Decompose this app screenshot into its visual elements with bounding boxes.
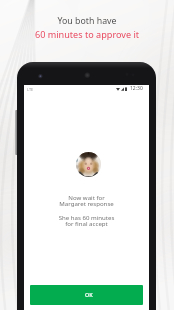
button[interactable]: OK — [30, 285, 143, 305]
staticText: 60 minutes to approve it — [0, 28, 174, 40]
staticText: 12:30 — [130, 85, 143, 92]
staticText: You both have — [0, 15, 174, 27]
staticText: Now wait for Margaret response — [24, 193, 149, 208]
staticText: LTE — [27, 87, 34, 92]
staticText: She has 60 minutes for final accept — [24, 213, 149, 228]
staticText: OK — [85, 291, 93, 298]
